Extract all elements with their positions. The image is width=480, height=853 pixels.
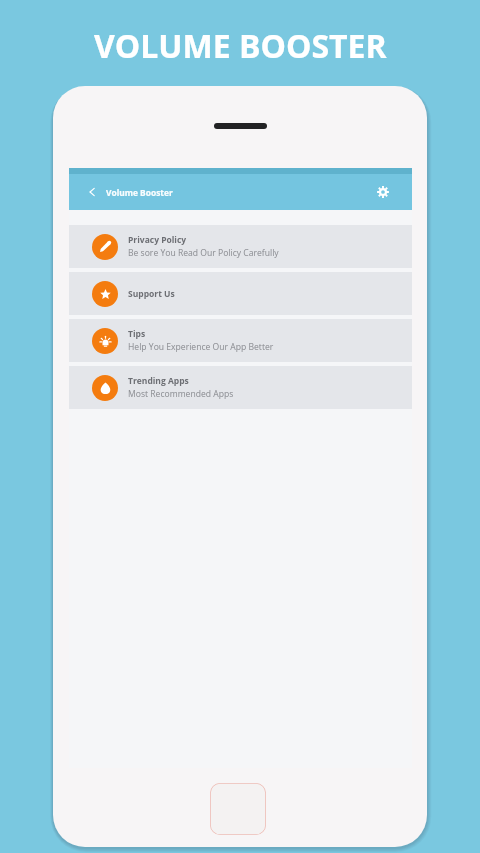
button[interactable]: Home: [210, 783, 266, 835]
staticText: VOLUME BOOSTER: [94, 24, 387, 68]
button[interactable]: Tips: [69, 319, 412, 362]
staticText: Privacy Policy: [128, 234, 187, 246]
staticText: Volume Booster: [106, 187, 173, 198]
staticText: Trending Apps: [128, 375, 189, 387]
button[interactable]: Settings: [368, 177, 398, 207]
staticText: Support Us: [128, 288, 175, 300]
staticText: Be sore You Read Our Policy Carefully: [128, 247, 279, 259]
button[interactable]: Trending Apps: [69, 366, 412, 409]
staticText: Tips: [128, 328, 146, 340]
button[interactable]: Support Us: [69, 272, 412, 315]
staticText: Most Recommended Apps: [128, 388, 234, 400]
staticText: Help You Experience Our App Better: [128, 341, 274, 353]
button[interactable]: Privacy Policy: [69, 225, 412, 268]
button[interactable]: Back: [83, 177, 101, 207]
